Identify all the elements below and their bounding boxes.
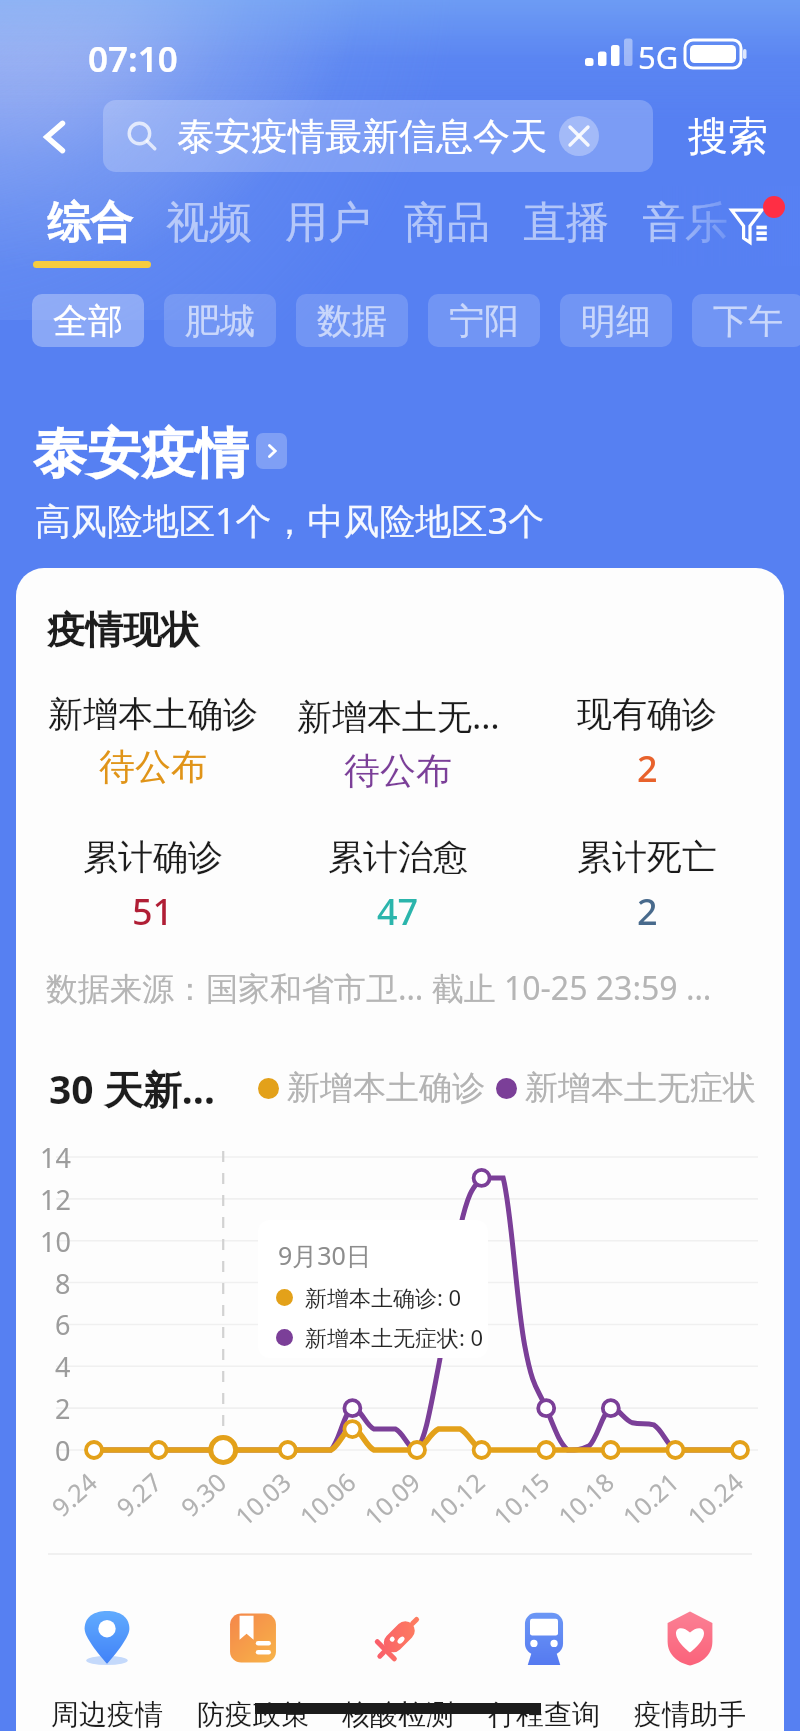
staticText: 疫情助手 — [634, 1697, 746, 1731]
staticText: 51 — [132, 887, 174, 936]
button[interactable]: Clear — [559, 116, 599, 156]
staticText: 0 — [55, 1432, 71, 1469]
staticText: 全部 — [53, 299, 123, 343]
button[interactable]: 宁阳 — [428, 294, 540, 347]
staticText: 8 — [55, 1265, 71, 1302]
staticText: 5G — [638, 36, 679, 78]
staticText: 音乐 — [642, 196, 728, 250]
button[interactable]: 明细 — [560, 294, 672, 347]
button[interactable]: 核酸检测 — [318, 1608, 478, 1731]
staticText: 泰安疫情 — [33, 420, 249, 482]
staticText: 2 — [637, 887, 658, 936]
button[interactable]: 商品 — [404, 193, 494, 253]
staticText: 数据 — [317, 299, 387, 343]
staticText: 用户 — [285, 196, 371, 250]
staticText: 30 天新… — [49, 1062, 216, 1115]
staticText: 核酸检测 — [342, 1697, 454, 1731]
button[interactable]: 下午 — [692, 294, 800, 347]
button[interactable]: 综合 — [47, 193, 137, 253]
staticText: 肥城 — [185, 299, 255, 343]
staticText: 累计死亡 — [577, 835, 717, 879]
staticText: 防疫政策 — [197, 1697, 309, 1731]
button[interactable]: 泰安疫情 — [33, 420, 287, 482]
staticText: 新增本土无… — [297, 692, 500, 740]
staticText: 07:10 — [88, 35, 178, 83]
staticText: 综合 — [47, 196, 133, 250]
staticText: 数据来源：国家和省市卫… 截止 10-25 23:59 … — [46, 966, 712, 1010]
staticText: 12 — [40, 1181, 71, 1218]
staticText: 新增本土无症状 — [525, 1067, 756, 1109]
button[interactable]: 泰安疫情最新信息今天 — [103, 100, 653, 172]
staticText: 2 — [55, 1390, 71, 1427]
staticText: 累计治愈 — [328, 835, 468, 879]
staticText: 新增本土无症状: 0 — [305, 1322, 484, 1352]
button[interactable]: 搜索 — [673, 100, 783, 172]
button[interactable]: 新增本土无… — [258, 692, 538, 793]
staticText: 现有确诊 — [577, 692, 717, 736]
staticText: 下午 — [713, 299, 783, 343]
staticText: 9月30日 — [278, 1238, 371, 1272]
button[interactable]: 直播 — [523, 193, 613, 253]
button[interactable]: 用户 — [285, 193, 375, 253]
staticText: 2 — [637, 744, 658, 793]
staticText: 14 — [40, 1139, 71, 1176]
button[interactable]: 数据 — [296, 294, 408, 347]
button[interactable]: 肥城 — [164, 294, 276, 347]
staticText: 新增本土确诊 — [48, 692, 258, 736]
staticText: 周边疫情 — [51, 1697, 163, 1731]
staticText: 47 — [377, 887, 419, 936]
button[interactable]: 防疫政策 — [173, 1608, 333, 1731]
staticText: 搜索 — [688, 111, 768, 161]
staticText: 高风险地区1个，中风险地区3个 — [35, 496, 545, 545]
staticText: 直播 — [523, 196, 609, 250]
button[interactable]: 行程查询 — [464, 1608, 624, 1731]
button[interactable]: 现有确诊 — [507, 692, 784, 793]
staticText: 累计确诊 — [83, 835, 223, 879]
staticText: 待公布 — [344, 748, 452, 793]
button[interactable]: Back — [22, 102, 88, 172]
button[interactable]: 新增本土确诊 — [16, 692, 293, 789]
staticText: 行程查询 — [488, 1697, 600, 1731]
button[interactable]: 周边疫情 — [27, 1608, 187, 1731]
staticText: 新增本土确诊 — [287, 1067, 485, 1109]
staticText: 视频 — [166, 196, 252, 250]
staticText: 疫情现状 — [47, 606, 199, 654]
staticText: 泰安疫情最新信息今天 — [177, 113, 547, 160]
button[interactable]: 累计死亡 — [507, 835, 784, 936]
staticText: 6 — [55, 1306, 71, 1343]
button[interactable]: 疫情助手 — [610, 1608, 770, 1731]
staticText: 商品 — [404, 196, 490, 250]
button[interactable]: 音乐 — [642, 193, 732, 253]
button[interactable]: Filter — [727, 205, 773, 247]
button[interactable]: 累计治愈 — [258, 835, 538, 936]
button[interactable]: 视频 — [166, 193, 256, 253]
staticText: 4 — [55, 1348, 71, 1385]
button[interactable]: 全部 — [32, 294, 144, 347]
staticText: 新增本土确诊: 0 — [305, 1282, 462, 1312]
button[interactable]: 累计确诊 — [16, 835, 293, 936]
staticText: 10 — [40, 1223, 71, 1260]
staticText: 明细 — [581, 299, 651, 343]
staticText: 宁阳 — [449, 299, 519, 343]
staticText: 待公布 — [99, 744, 207, 789]
